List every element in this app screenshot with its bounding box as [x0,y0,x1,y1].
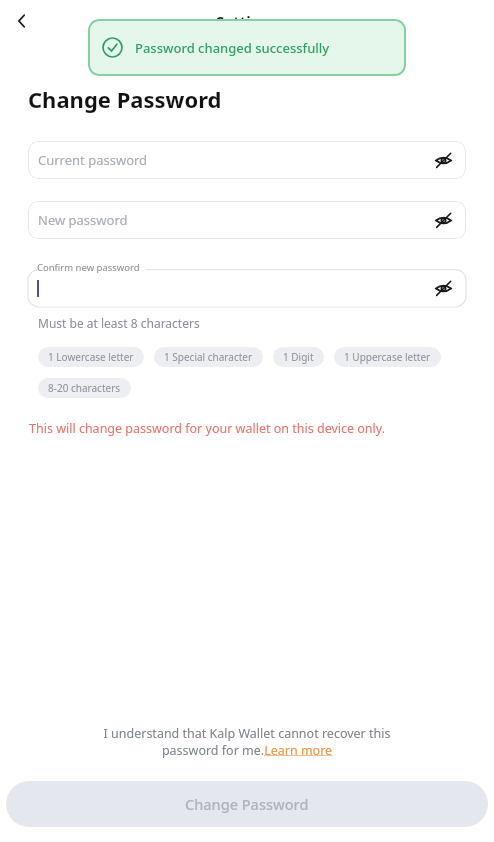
button[interactable]: Show password [430,207,456,233]
button[interactable]: 8-20 characters [38,378,131,398]
staticText: New password [38,211,128,229]
staticText: 1 Digit [283,350,314,364]
staticText: 1 Special character [164,350,253,364]
button[interactable]: 1 Lowercase letter [38,347,144,367]
staticText: Settings [216,11,278,31]
staticText: Change Password [28,84,222,114]
button[interactable]: Current password [28,141,466,179]
staticText: 8-20 characters [48,381,121,395]
staticText: Change Password [185,794,309,814]
staticText: Confirm new password [37,261,140,274]
button[interactable]: Show password [430,275,456,301]
button[interactable]: 1 Uppercase letter [334,347,441,367]
button[interactable]: New password [28,201,466,239]
button[interactable]: Back [6,5,38,37]
staticText: This will change password for your walle… [29,420,386,437]
staticText: Current password [38,151,148,169]
staticText: Password changed successfully [135,39,330,57]
staticText: 1 Lowercase letter [48,350,134,364]
button[interactable]: 1 Special character [154,347,263,367]
button[interactable]: 1 Digit [273,347,324,367]
button[interactable]: Show password [430,147,456,173]
staticText: Must be at least 8 characters [38,315,200,331]
button[interactable]: Change Password [6,781,488,827]
staticText: I understand that Kalp Wallet cannot rec… [95,725,399,758]
button[interactable]: Password changed successfully [88,19,406,76]
staticText: 1 Uppercase letter [344,350,431,364]
